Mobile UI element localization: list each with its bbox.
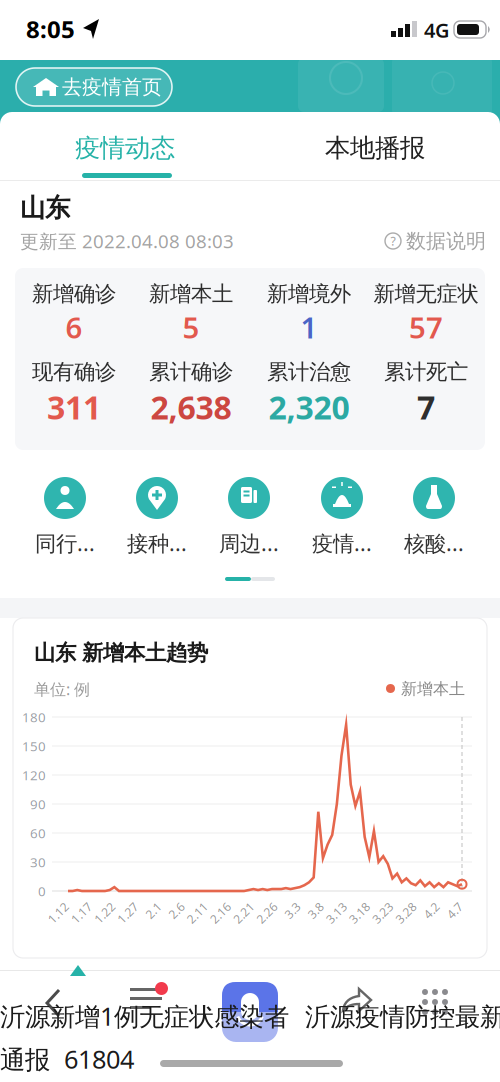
staticText: 新增境外 [267, 281, 351, 307]
staticText: 120 [22, 766, 46, 784]
staticText: 4.2 [423, 902, 440, 918]
staticText: 6 [65, 307, 82, 346]
staticText: 现有确诊 [32, 359, 116, 385]
staticText: 沂源新增1例无症状感染者 沂源疫情防控最新通报 [0, 999, 500, 1033]
staticText: 去疫情首页 [62, 75, 162, 99]
staticText: 30 [30, 853, 46, 871]
staticText: 2.21 [232, 905, 256, 921]
staticText: 新增无症状 [373, 281, 478, 307]
button[interactable]: Share [340, 985, 374, 1015]
staticText: 2,320 [268, 386, 349, 428]
button[interactable]: ? [366, 227, 486, 255]
staticText: 311 [47, 386, 101, 428]
staticText: 2.11 [185, 905, 209, 921]
button[interactable]: 同行... [19, 477, 111, 559]
button[interactable]: 本地播报 [250, 126, 500, 170]
button[interactable]: More [420, 987, 450, 1017]
staticText: 1.17 [69, 905, 93, 921]
staticText: 1.12 [46, 905, 70, 921]
staticText: 3.3 [284, 902, 301, 918]
staticText: 同行... [35, 529, 95, 557]
button[interactable]: 疫情动态 [0, 126, 250, 170]
staticText: 180 [22, 708, 46, 726]
staticText: 1 [300, 307, 317, 346]
staticText: 新增本土 [401, 679, 465, 699]
staticText: 单位: 例 [34, 678, 90, 700]
staticText: 本地播报 [325, 132, 425, 163]
button[interactable]: 接种... [111, 477, 203, 559]
staticText: ? [390, 233, 395, 249]
staticText: 3.28 [394, 905, 418, 921]
staticText: 2,638 [150, 386, 231, 428]
staticText: 累计死亡 [384, 359, 468, 385]
staticText: 8:05 [26, 13, 75, 45]
button[interactable]: Menu [128, 982, 168, 1016]
staticText: 新增确诊 [32, 281, 116, 307]
staticText: 数据说明 [406, 229, 486, 253]
staticText: 3.8 [307, 902, 324, 918]
staticText: 5 [182, 307, 199, 346]
staticText: 山东 新增本土趋势 [34, 640, 208, 666]
button[interactable]: 去疫情首页 [16, 68, 172, 106]
staticText: 2.16 [208, 905, 232, 921]
staticText: 接种... [127, 529, 187, 557]
staticText: 山东 [20, 192, 70, 223]
staticText: 4G [424, 17, 450, 43]
staticText: 1.22 [93, 905, 117, 921]
staticText: 通报 61804 [0, 1042, 134, 1076]
button[interactable]: 核酸... [388, 477, 480, 559]
staticText: 57 [409, 307, 443, 346]
staticText: 150 [22, 737, 46, 755]
staticText: 60 [30, 824, 46, 842]
staticText: 3.23 [371, 905, 395, 921]
staticText: 累计治愈 [267, 359, 351, 385]
staticText: 2.1 [145, 902, 162, 918]
staticText: 3.18 [347, 905, 371, 921]
staticText: 累计确诊 [149, 359, 233, 385]
button[interactable]: 周边... [203, 477, 295, 559]
staticText: 7 [417, 386, 435, 428]
staticText: 2.6 [168, 902, 185, 918]
staticText: 2.26 [255, 905, 279, 921]
staticText: 1.27 [116, 905, 140, 921]
staticText: 新增本土 [149, 281, 233, 307]
staticText: 90 [30, 795, 46, 813]
staticText: 3.13 [324, 905, 348, 921]
button[interactable]: Voice search [222, 982, 278, 1042]
button[interactable]: Back [44, 988, 64, 1018]
staticText: 0 [38, 882, 46, 900]
staticText: 周边... [219, 529, 279, 557]
staticText: 核酸... [404, 529, 464, 557]
button[interactable]: 疫情... [296, 477, 388, 559]
staticText: 4.7 [446, 902, 463, 918]
staticText: 更新至 2022.04.08 08:03 [20, 229, 234, 253]
staticText: 疫情... [312, 529, 372, 557]
staticText: 疫情动态 [75, 132, 175, 163]
